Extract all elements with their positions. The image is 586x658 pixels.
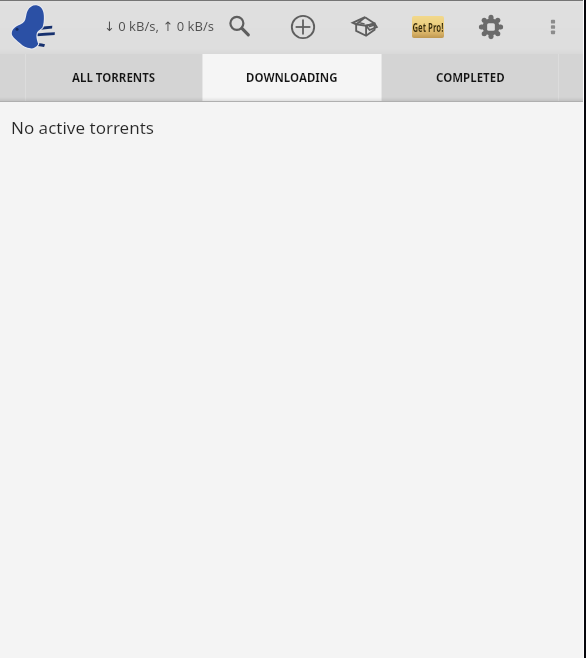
staticText: DOWNLOADING	[246, 70, 338, 86]
button[interactable]: More options	[533, 7, 573, 47]
button[interactable]: ALL TORRENTS	[26, 54, 202, 102]
staticText: Get Pro!	[412, 18, 444, 36]
staticText: COMPLETED	[436, 70, 505, 86]
staticText: ↓ 0 kB/s, ↑ 0 kB/s	[104, 17, 214, 35]
button[interactable]: Open torrent file	[344, 5, 388, 49]
button[interactable]: DOWNLOADING	[203, 54, 381, 102]
button[interactable]: Settings	[469, 5, 513, 49]
button[interactable]: COMPLETED	[382, 54, 558, 102]
staticText: ALL TORRENTS	[72, 70, 156, 86]
button[interactable]: Get Pro!	[412, 16, 444, 38]
button[interactable]: Add torrent	[281, 5, 325, 49]
button[interactable]: Search	[218, 5, 262, 49]
staticText: No active torrents	[11, 116, 154, 139]
button[interactable]: tTorrent	[10, 3, 57, 50]
